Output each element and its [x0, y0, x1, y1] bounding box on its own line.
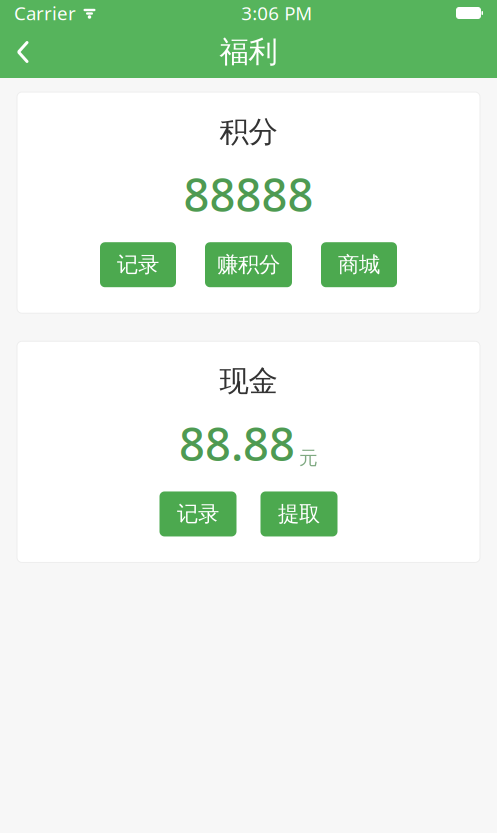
button[interactable]: 赚积分 [205, 242, 292, 287]
staticText: Carrier [14, 1, 76, 25]
staticText: 积分 [219, 114, 277, 150]
staticText: 现金 [219, 363, 277, 399]
staticText: 商城 [338, 252, 380, 278]
button[interactable]: 记录 [159, 491, 236, 536]
staticText: 元 [299, 446, 318, 469]
staticText: 提取 [278, 501, 320, 527]
staticText: 赚积分 [217, 252, 280, 278]
staticText: 记录 [177, 501, 219, 527]
staticText: 88.88 [179, 413, 295, 473]
button[interactable]: Back [0, 27, 46, 77]
staticText: 记录 [117, 252, 159, 278]
button[interactable]: 记录 [100, 242, 176, 287]
staticText: 88888 [183, 164, 313, 224]
button[interactable]: 提取 [260, 491, 337, 536]
button[interactable]: 商城 [321, 242, 397, 287]
staticText: 福利 [219, 34, 277, 70]
staticText: 3:06 PM [241, 1, 312, 25]
